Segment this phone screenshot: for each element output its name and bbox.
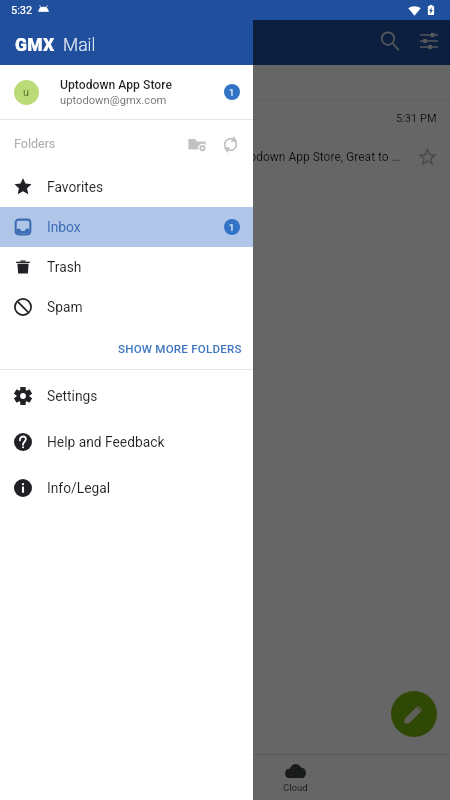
staticText: 5:31 PM [396, 112, 437, 125]
button[interactable]: Help and Feedback [0, 419, 253, 465]
staticText: 1 [229, 87, 235, 98]
button[interactable]: Inbox [0, 207, 253, 247]
staticText: Uptodown App Store, Great to … [231, 150, 412, 164]
staticText: Cloud [283, 782, 308, 793]
button[interactable]: Filter [408, 20, 450, 62]
button[interactable]: Compose new mail [391, 691, 437, 737]
button[interactable]: Star [412, 142, 442, 172]
button[interactable]: Refresh [212, 126, 248, 162]
staticText: Trash [47, 259, 240, 275]
staticText: Mail [63, 35, 96, 56]
button[interactable]: Info/Legal [0, 465, 253, 511]
button[interactable]: Cloud [256, 754, 335, 800]
staticText: 5:32 [11, 4, 33, 17]
staticText: Help and Feedback [47, 434, 240, 450]
staticText: Folders [14, 136, 56, 151]
staticText: uptodown@gmx.com [60, 94, 167, 107]
staticText: Spam [47, 299, 240, 315]
button[interactable]: Uptodown App Store, Great to … [0, 131, 450, 173]
staticText: Info/Legal [47, 480, 240, 496]
button[interactable]: Trash [0, 247, 253, 287]
staticText: Settings [47, 388, 240, 404]
staticText: Uptodown App Store [60, 78, 172, 92]
button[interactable]: Spam [0, 287, 253, 327]
button[interactable]: Favorites [0, 167, 253, 207]
staticText: GMX [15, 35, 55, 56]
button[interactable]: Search [369, 20, 411, 62]
staticText: Inbox [47, 219, 224, 235]
staticText: SHOW MORE FOLDERS [118, 342, 242, 356]
button[interactable]: u [0, 65, 253, 119]
staticText: u [23, 86, 30, 99]
staticText: 1 [229, 222, 235, 233]
button[interactable]: Settings [0, 373, 253, 419]
staticText: Favorites [47, 179, 240, 195]
button[interactable]: SHOW MORE FOLDERS [102, 332, 253, 364]
button[interactable]: Manage folders [179, 126, 215, 162]
